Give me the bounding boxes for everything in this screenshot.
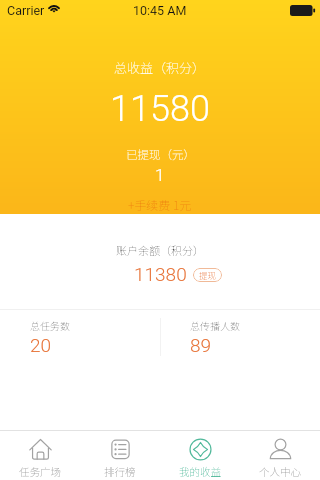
staticText: 排行榜	[104, 464, 136, 479]
staticText: 总收益（积分）	[114, 58, 206, 77]
staticText: 已提现（元）	[126, 146, 195, 163]
staticText: 20	[30, 334, 52, 356]
staticText: 10:45 AM	[133, 3, 187, 18]
staticText: 11380	[134, 263, 187, 285]
staticText: 11580	[110, 88, 210, 130]
staticText: 提现	[199, 269, 217, 281]
staticText: 个人中心	[259, 464, 301, 479]
staticText: 账户余额（积分）	[116, 242, 204, 258]
staticText: 1	[155, 165, 165, 185]
staticText: 我的收益	[179, 464, 221, 479]
button[interactable]: 排行榜	[80, 431, 160, 480]
button[interactable]: 提现	[193, 268, 222, 282]
button[interactable]: 我的收益	[160, 431, 240, 480]
staticText: 总任务数	[30, 318, 70, 332]
button[interactable]: 任务广场	[0, 431, 80, 480]
staticText: 89	[190, 334, 212, 356]
staticText: 总传播人数	[190, 318, 240, 332]
staticText: +手续费 1元	[128, 196, 192, 213]
staticText: Carrier	[7, 3, 45, 18]
button[interactable]: 个人中心	[240, 431, 320, 480]
staticText: 任务广场	[19, 464, 61, 479]
